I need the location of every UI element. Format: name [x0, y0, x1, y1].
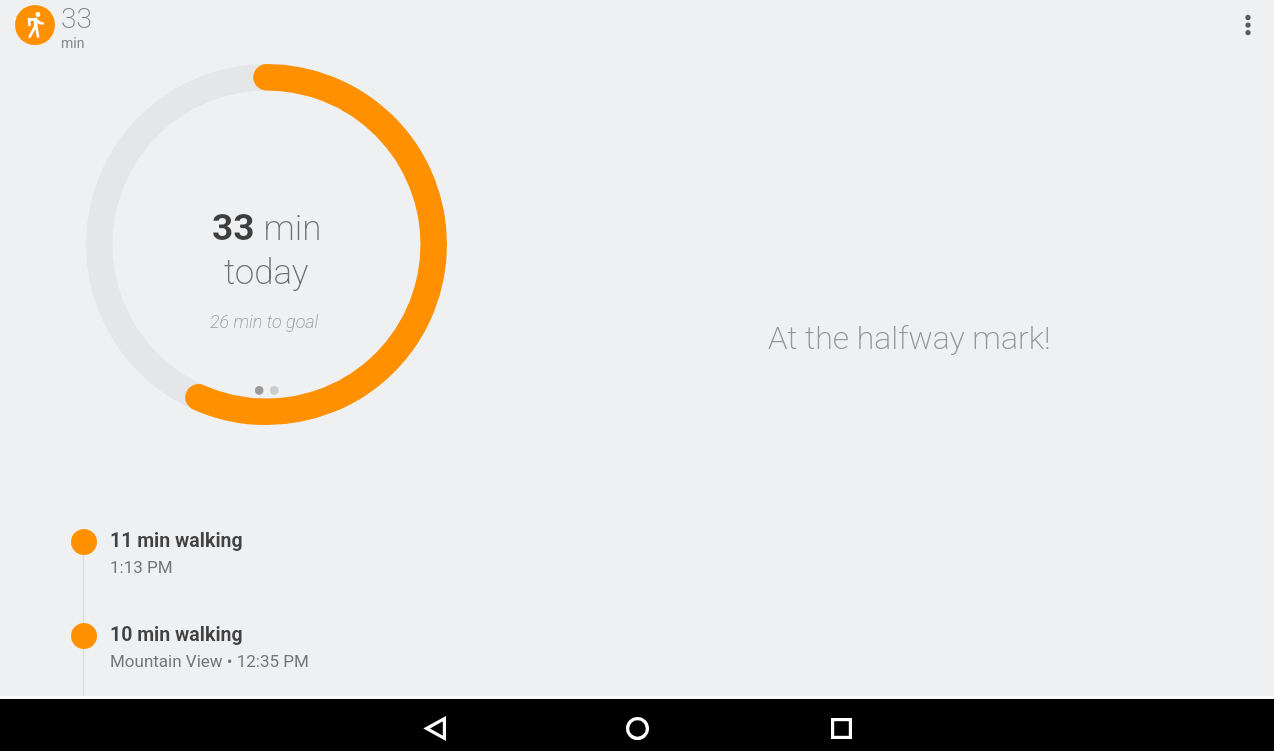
button[interactable]: 10 min walking	[60, 623, 680, 695]
staticText: min	[255, 208, 322, 249]
staticText: 11 min walking	[110, 529, 243, 552]
button[interactable]: Home	[607, 704, 667, 751]
staticText: 10 min walking	[110, 623, 243, 646]
staticText: At the halfway mark!	[768, 319, 1051, 357]
staticText: Mountain View • 12:35 PM	[110, 651, 309, 671]
staticText: today	[224, 252, 309, 293]
staticText: 33	[61, 2, 92, 35]
button[interactable]: Back	[405, 704, 465, 751]
button[interactable]: Walking activity	[15, 5, 55, 45]
staticText: 33	[212, 206, 255, 249]
button[interactable]: 11 min walking	[60, 529, 680, 601]
button[interactable]: More options	[1226, 3, 1270, 47]
staticText: 26 min to goal	[210, 311, 319, 332]
staticText: min	[61, 35, 85, 51]
staticText: 1:13 PM	[110, 557, 173, 577]
button[interactable]: Recent apps	[811, 704, 871, 751]
